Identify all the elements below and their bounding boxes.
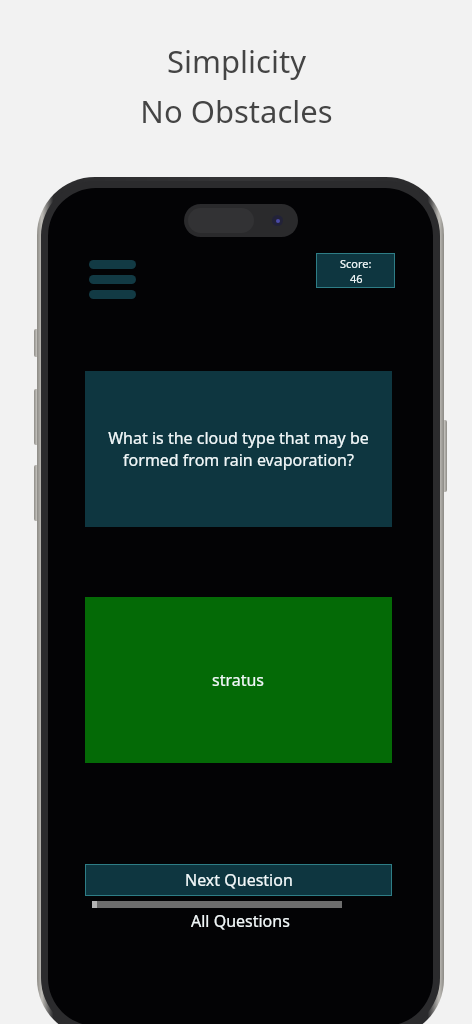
staticText: stratus (212, 669, 265, 691)
button[interactable]: Score: (316, 253, 395, 288)
staticText: 46 (350, 271, 363, 286)
button[interactable] (92, 901, 342, 908)
staticText: What is the cloud type that may be forme… (93, 427, 384, 471)
staticText: All Questions (191, 910, 290, 932)
button[interactable]: What is the cloud type that may be forme… (85, 371, 392, 527)
staticText: Score: (340, 256, 372, 271)
button[interactable]: All Questions (48, 910, 433, 932)
button[interactable]: Menu (85, 256, 140, 303)
button[interactable]: stratus (85, 597, 392, 763)
staticText: Next Question (185, 869, 293, 891)
staticText: No Obstacles (140, 90, 333, 132)
staticText: Simplicity (167, 40, 306, 82)
button[interactable]: Next Question (85, 864, 392, 896)
